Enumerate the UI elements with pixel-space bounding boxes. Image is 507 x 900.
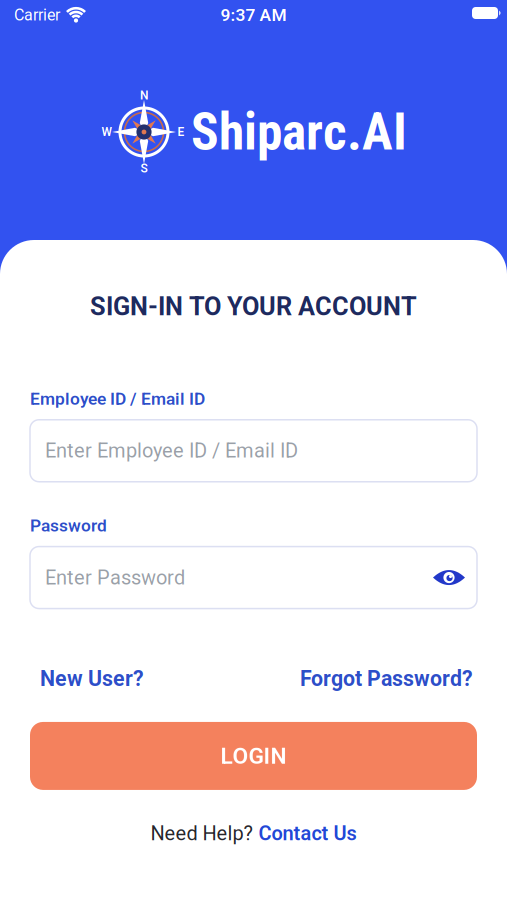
button[interactable]: Contact Us <box>258 822 356 845</box>
staticText: S <box>140 162 147 175</box>
button[interactable]: Enter Password <box>30 547 477 609</box>
button[interactable]: Forgot Password? <box>300 667 473 691</box>
staticText: Carrier <box>14 6 60 24</box>
staticText: Forgot Password? <box>300 667 473 691</box>
staticText: SIGN-IN TO YOUR ACCOUNT <box>90 292 417 321</box>
staticText: Enter Employee ID / Email ID <box>45 439 298 462</box>
button[interactable]: Enter Employee ID / Email ID <box>30 420 477 482</box>
staticText: LOGIN <box>220 743 286 769</box>
staticText: E <box>177 125 184 139</box>
button[interactable]: New User? <box>40 667 144 691</box>
staticText: Enter Password <box>45 566 185 589</box>
staticText: Shiparc.AI <box>191 102 407 162</box>
staticText: N <box>140 89 148 102</box>
staticText: Employee ID / Email ID <box>30 389 205 409</box>
staticText: Password <box>30 516 107 536</box>
button[interactable]: Show password <box>432 566 477 590</box>
button[interactable]: LOGIN <box>30 722 477 790</box>
staticText: Contact Us <box>258 822 356 845</box>
staticText: Need Help? <box>150 822 252 845</box>
staticText: New User? <box>40 667 144 691</box>
staticText: 9:37 AM <box>220 5 286 25</box>
staticText: W <box>101 125 112 139</box>
